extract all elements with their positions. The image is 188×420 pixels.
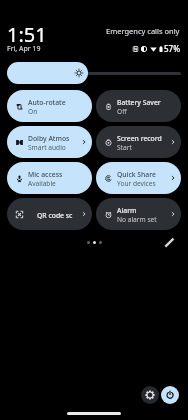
staticText: 57% (164, 43, 180, 54)
button[interactable]: Battery Saver (96, 90, 181, 122)
staticText: Mic access (28, 170, 63, 179)
staticText: On (28, 107, 38, 116)
button[interactable]: Screen record (96, 126, 181, 158)
staticText: Dolby Atmos (28, 134, 70, 143)
staticText: Your devices (117, 179, 156, 188)
staticText: Screen record (117, 134, 162, 143)
staticText: Alarm (117, 206, 137, 215)
staticText: Off (117, 107, 127, 116)
staticText: QR code sc (37, 211, 73, 220)
button[interactable]: Settings (141, 386, 159, 404)
staticText: Battery Saver (117, 98, 161, 107)
staticText: Auto-rotate (28, 98, 66, 107)
staticText: Start (117, 143, 132, 152)
staticText: No alarm set (117, 215, 157, 224)
button[interactable]: Auto-rotate (7, 90, 92, 122)
staticText: Available (28, 179, 56, 188)
button[interactable]: QR code sc (7, 198, 92, 230)
button[interactable]: Power (161, 386, 179, 404)
staticText: Fri, Apr 19 (7, 44, 41, 54)
button[interactable]: Brightness (7, 62, 181, 84)
staticText: Smart audio (28, 143, 66, 152)
button[interactable]: Mic access (7, 162, 92, 194)
staticText: Quick Share (117, 170, 156, 179)
button[interactable]: Quick Share (96, 162, 181, 194)
staticText: 1:51 (7, 21, 47, 48)
button[interactable]: Edit tiles (164, 237, 175, 248)
button[interactable]: Dolby Atmos (7, 126, 92, 158)
staticText: Emergency calls only (106, 26, 180, 36)
button[interactable]: Alarm (96, 198, 181, 230)
